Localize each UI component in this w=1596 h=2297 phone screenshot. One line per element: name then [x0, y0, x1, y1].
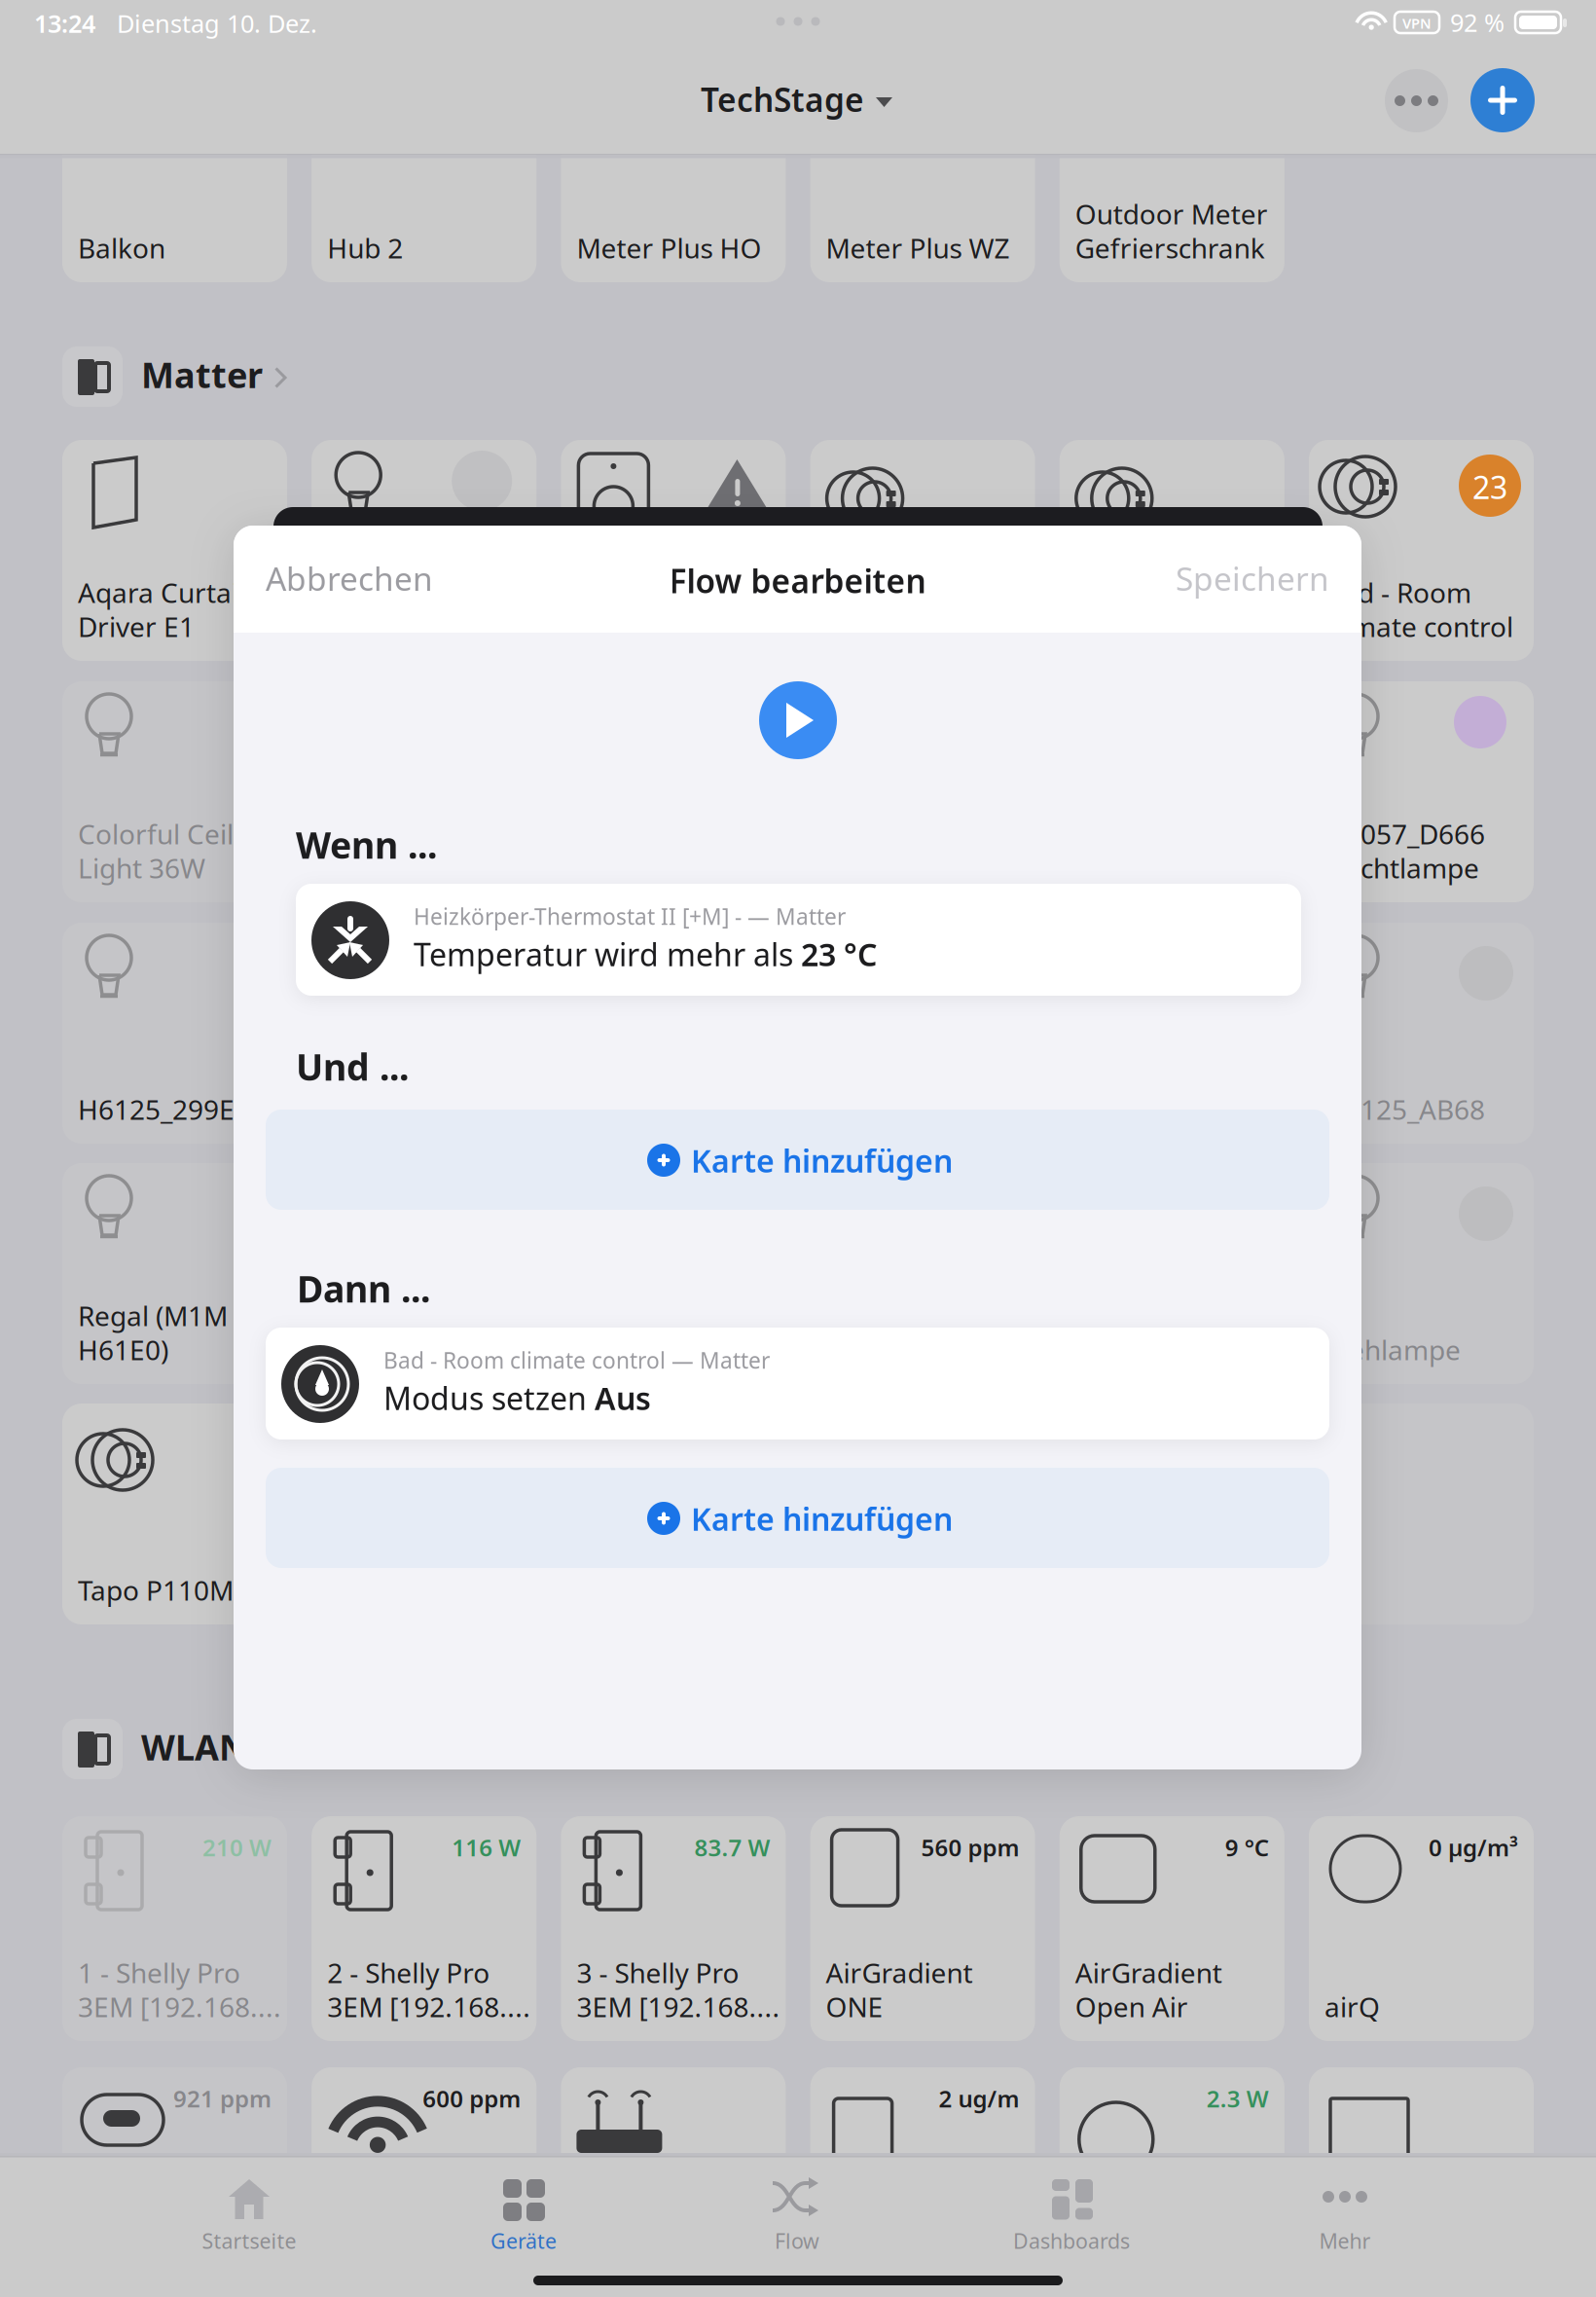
staticText: Balkon	[78, 230, 165, 266]
staticText: 3EM [192.168....	[577, 1988, 780, 2025]
staticText: 560 ppm	[921, 1832, 1019, 1863]
staticText: Karte hinzufügen	[691, 1140, 953, 1181]
staticText: Light 36W	[78, 850, 205, 886]
staticText: Bad - Room climate control — Matter	[383, 1346, 770, 1375]
staticText: AirGradient	[1075, 1954, 1222, 1991]
staticText: Nachtlampe	[1324, 850, 1479, 886]
staticText: Dashboards	[1013, 2227, 1130, 2254]
staticText: Stehlampe	[1324, 1331, 1461, 1368]
staticText: H61E0)	[78, 1331, 168, 1368]
button[interactable]: Karte hinzufügen	[266, 1110, 1329, 1210]
staticText: Speichern	[1176, 557, 1329, 600]
staticText: Und ...	[296, 1042, 409, 1091]
staticText: Regal (M1M	[78, 1297, 228, 1334]
button[interactable]: Geräte	[387, 2156, 660, 2297]
staticText: Geräte	[490, 2227, 557, 2254]
staticText: 1 - Shelly Pro	[78, 1954, 240, 1991]
staticText: Dann ...	[297, 1264, 430, 1313]
staticText: 116 W	[452, 1832, 521, 1863]
staticText: Flow bearbeiten	[669, 559, 926, 602]
staticText: Gefrierschrank	[1075, 230, 1265, 266]
staticText: Wenn ...	[296, 820, 437, 869]
staticText: AirGradient	[826, 1954, 973, 1991]
button[interactable]: Add	[1470, 68, 1535, 132]
button[interactable]: Abbrechen	[234, 526, 526, 633]
button[interactable]: Karte hinzufügen	[266, 1468, 1329, 1568]
button[interactable]: Flow	[661, 2156, 933, 2297]
staticText: airQ	[1324, 1988, 1380, 2025]
staticText: Heizkörper-Thermostat II [+M] - — Matter	[414, 902, 846, 931]
staticText: Temperatur wird mehr als 23 °C	[414, 933, 877, 975]
button[interactable]: More options	[1385, 69, 1448, 132]
button[interactable]: Heizkörper-Thermostat II [+M] - — Matter	[296, 884, 1301, 996]
staticText: 3EM [192.168....	[327, 1988, 531, 2025]
staticText: Meter Plus HO	[577, 230, 761, 266]
staticText: H6125_299E	[78, 1091, 235, 1127]
staticText: H6125_AB68	[1324, 1091, 1485, 1127]
staticText: 210 W	[202, 1832, 272, 1863]
staticText: Matter	[141, 351, 263, 398]
staticText: Meter Plus WZ	[826, 230, 1010, 266]
staticText: Tapo P110M	[78, 1572, 234, 1608]
staticText: ONE	[826, 1988, 883, 2025]
staticText: 2 ug/m	[939, 2083, 1019, 2114]
staticText: Bad - Room	[1324, 574, 1471, 610]
button[interactable]: Dashboards	[935, 2156, 1208, 2297]
button[interactable]: Bad - Room climate control — Matter	[266, 1328, 1329, 1440]
staticText: 13:24	[34, 7, 95, 40]
staticText: Startseite	[202, 2227, 296, 2254]
staticText: H5057_D666	[1324, 816, 1485, 852]
staticText: Outdoor Meter	[1075, 196, 1268, 232]
staticText: Open Air	[1075, 1988, 1188, 2025]
staticText: 600 ppm	[423, 2083, 521, 2114]
staticText: Karte hinzufügen	[691, 1498, 953, 1539]
button[interactable]: Test flow	[759, 681, 837, 759]
staticText: 0 µg/m³	[1429, 1832, 1518, 1863]
staticText: 9 °C	[1225, 1832, 1269, 1863]
button[interactable]: Mehr	[1209, 2156, 1481, 2297]
staticText: Colorful Ceiling	[78, 816, 273, 852]
staticText: 2.3 W	[1207, 2083, 1269, 2114]
staticText: 92 %	[1450, 6, 1505, 39]
staticText: Hub 2	[327, 230, 403, 266]
button[interactable]: Speichern	[1070, 526, 1329, 633]
staticText: VPN	[1402, 14, 1432, 33]
staticText: Mehr	[1319, 2227, 1371, 2254]
staticText: Dienstag 10. Dez.	[117, 7, 317, 40]
staticText: Driver E1	[78, 608, 195, 645]
staticText: Abbrechen	[266, 557, 433, 600]
staticText: 2 - Shelly Pro	[327, 1954, 490, 1991]
staticText: 3EM [192.168....	[78, 1988, 281, 2025]
staticText: TechStage	[701, 78, 864, 121]
staticText: Flow	[775, 2227, 819, 2254]
staticText: 83.7 W	[694, 1832, 770, 1863]
staticText: 23	[1472, 466, 1507, 508]
staticText: 3 - Shelly Pro	[577, 1954, 739, 1991]
staticText: Modus setzen Aus	[383, 1377, 651, 1419]
staticText: Aqara Curtain	[78, 574, 255, 610]
staticText: climate control	[1324, 608, 1513, 645]
staticText: 921 ppm	[173, 2083, 272, 2114]
button[interactable]: Startseite	[113, 2156, 385, 2297]
staticText: WLAN	[141, 1724, 247, 1770]
